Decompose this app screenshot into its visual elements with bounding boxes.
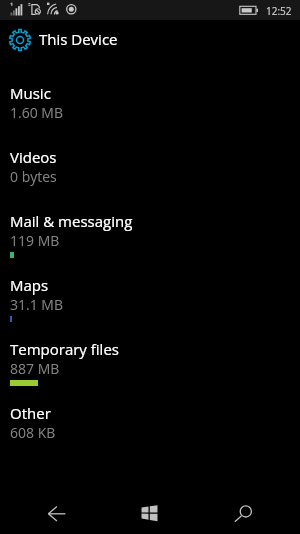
staticText: 887 MB xyxy=(10,359,60,378)
button[interactable]: Start xyxy=(100,480,200,534)
staticText: 608 KB xyxy=(10,423,56,442)
staticText: 0 bytes xyxy=(10,167,57,186)
staticText: 12:52 xyxy=(266,4,292,18)
staticText: Music xyxy=(10,83,51,103)
button[interactable]: Maps xyxy=(0,270,300,334)
button[interactable]: Music xyxy=(0,78,300,142)
staticText: Maps xyxy=(10,275,49,295)
staticText: This Device xyxy=(39,29,118,49)
staticText: Videos xyxy=(10,147,57,167)
staticText: 119 MB xyxy=(10,231,60,250)
staticText: Temporary files xyxy=(10,339,119,359)
staticText: 31.1 MB xyxy=(10,295,63,314)
button[interactable]: Search xyxy=(200,480,300,534)
button[interactable]: Mail & messaging xyxy=(0,206,300,270)
button[interactable]: Temporary files xyxy=(0,334,300,398)
button[interactable]: Videos xyxy=(0,142,300,206)
button[interactable]: Other xyxy=(0,398,300,462)
button[interactable]: Back xyxy=(0,480,100,534)
staticText: 1.60 MB xyxy=(10,103,63,122)
staticText: Mail & messaging xyxy=(10,211,133,231)
button[interactable]: This Device xyxy=(0,20,300,60)
staticText: Other xyxy=(10,403,51,423)
